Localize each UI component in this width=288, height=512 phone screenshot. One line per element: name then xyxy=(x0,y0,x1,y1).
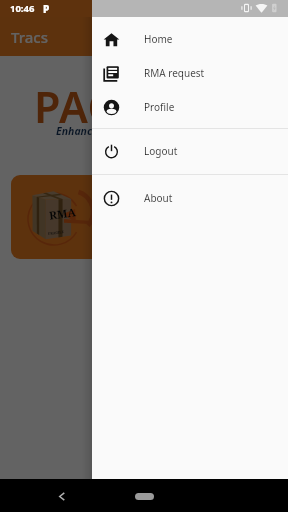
staticText: Home xyxy=(144,32,173,46)
button[interactable]: About xyxy=(92,181,288,215)
button[interactable]: Back xyxy=(53,487,71,505)
staticText: RMA xyxy=(48,204,77,223)
staticText: Enhancing xyxy=(56,124,108,138)
staticText: Tracs xyxy=(11,27,48,47)
staticText: Profile xyxy=(144,100,175,114)
staticText: About xyxy=(144,191,173,205)
button[interactable]: RMA request xyxy=(92,56,288,90)
staticText: PACS xyxy=(34,77,140,136)
staticText: FRAGILE xyxy=(48,229,64,236)
staticText: 10:46 xyxy=(10,2,35,15)
button[interactable]: Home xyxy=(135,493,154,500)
button[interactable]: RMA xyxy=(11,175,146,259)
button[interactable]: Profile xyxy=(92,90,288,124)
button[interactable]: Home xyxy=(92,22,288,56)
button[interactable]: Logout xyxy=(92,134,288,168)
staticText: P xyxy=(43,2,50,16)
staticText: Logout xyxy=(144,144,178,158)
staticText: RMA request xyxy=(144,66,205,80)
